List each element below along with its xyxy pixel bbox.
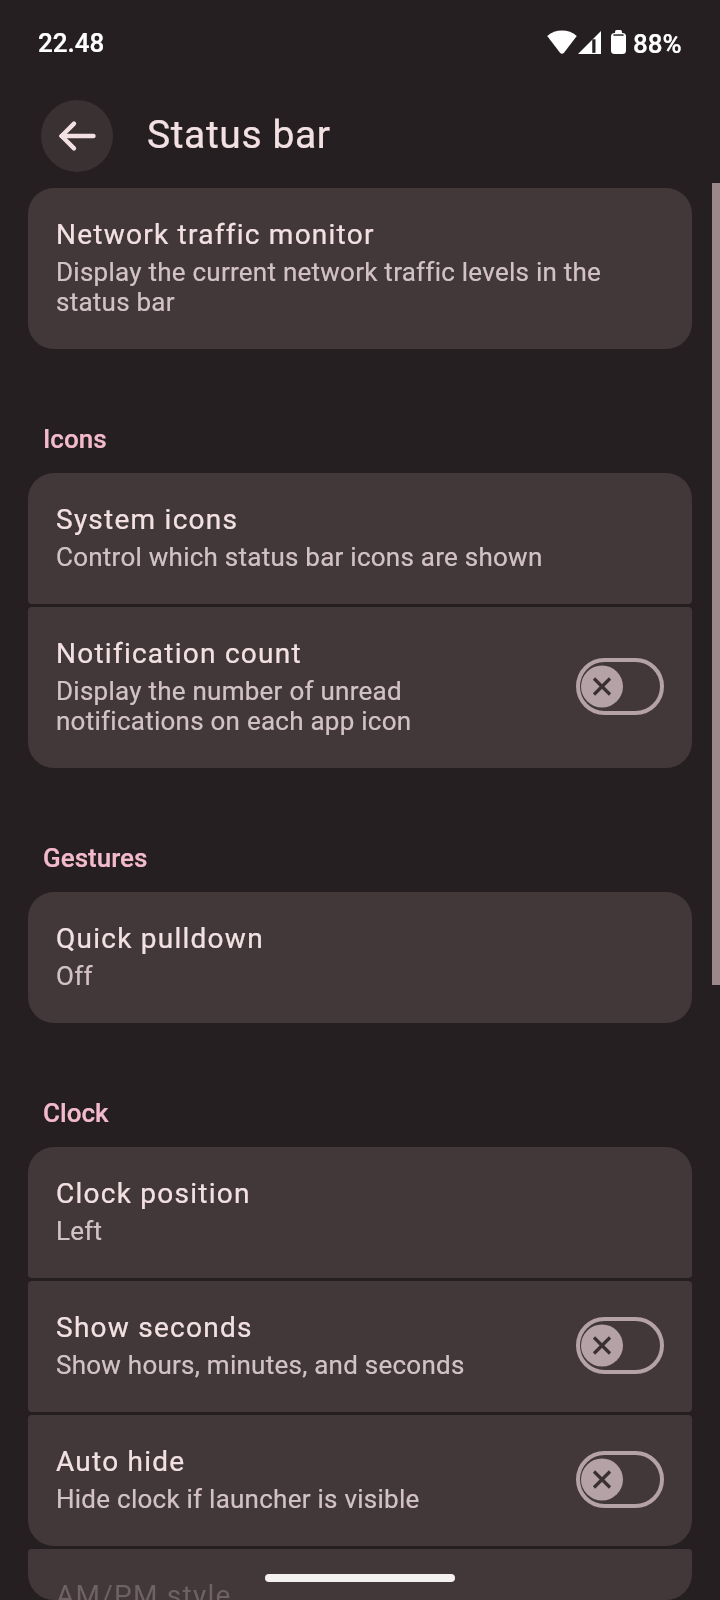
button[interactable]: Notification count	[28, 607, 692, 768]
button[interactable]: Network traffic monitor	[28, 188, 692, 349]
button[interactable]: Quick pulldown	[28, 892, 692, 1023]
staticText: Display the current network traffic leve…	[56, 257, 664, 317]
staticText: Clock	[43, 1098, 109, 1128]
staticText: 22.48	[38, 28, 105, 58]
staticText: Hide clock if launcher is visible	[56, 1484, 420, 1514]
staticText: Show seconds	[56, 1311, 253, 1344]
staticText: System icons	[56, 503, 239, 536]
staticText: AM/PM style	[56, 1579, 232, 1600]
button[interactable]: Auto hide	[28, 1415, 692, 1546]
staticText: Icons	[43, 424, 107, 454]
button[interactable]: System icons	[28, 473, 692, 604]
staticText: Network traffic monitor	[56, 218, 375, 251]
staticText: Clock position	[56, 1177, 251, 1210]
staticText: Quick pulldown	[56, 922, 264, 955]
staticText: Control which status bar icons are shown	[56, 542, 543, 572]
staticText: Show hours, minutes, and seconds	[56, 1350, 465, 1380]
staticText: Notification count	[56, 637, 302, 670]
button[interactable]: Toggle	[576, 1451, 664, 1508]
staticText: Left	[56, 1216, 103, 1246]
button[interactable]: Toggle	[576, 1317, 664, 1374]
staticText: Display the number of unread notificatio…	[56, 676, 552, 736]
staticText: Auto hide	[56, 1445, 186, 1478]
staticText: Off	[56, 961, 93, 991]
staticText: 88%	[633, 29, 682, 59]
button[interactable]: AM/PM style	[28, 1549, 692, 1600]
staticText: Status bar	[147, 112, 331, 158]
button[interactable]: Toggle	[576, 658, 664, 715]
button[interactable]: Back	[41, 100, 113, 172]
button[interactable]: Clock position	[28, 1147, 692, 1278]
staticText: Gestures	[43, 843, 148, 873]
button[interactable]: Show seconds	[28, 1281, 692, 1412]
